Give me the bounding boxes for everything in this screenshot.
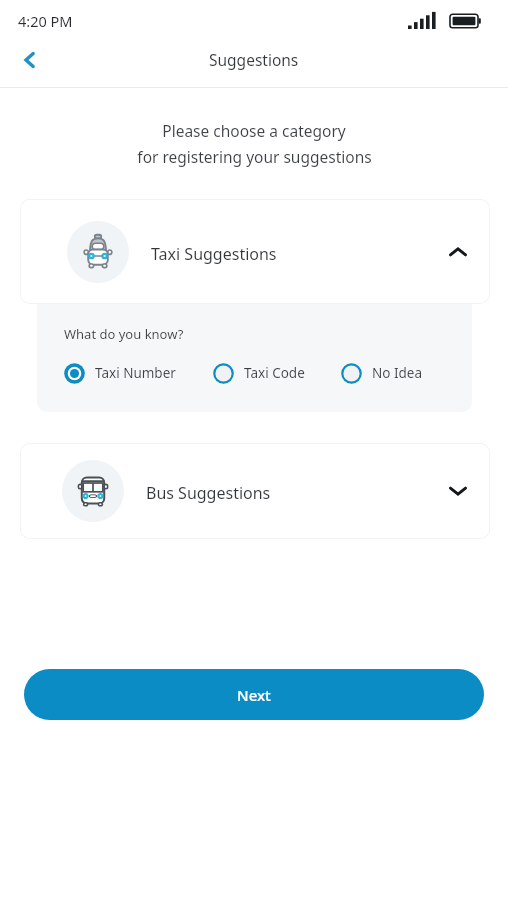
button[interactable]: Taxi Suggestions bbox=[20, 199, 490, 304]
button[interactable]: Taxi Number bbox=[63, 358, 176, 388]
button[interactable]: Back bbox=[8, 38, 52, 82]
staticText: for registering your suggestions bbox=[137, 146, 372, 167]
staticText: No Idea bbox=[372, 364, 423, 382]
button[interactable]: Taxi Code bbox=[212, 358, 305, 388]
staticText: Please choose a category bbox=[162, 120, 346, 141]
button[interactable]: Bus Suggestions bbox=[20, 443, 490, 539]
staticText: Suggestions bbox=[209, 49, 299, 70]
button[interactable]: No Idea bbox=[340, 358, 423, 388]
button[interactable]: Collapse Taxi Suggestions bbox=[436, 230, 480, 274]
button[interactable]: Expand Bus Suggestions bbox=[436, 469, 480, 513]
button[interactable]: Next bbox=[24, 669, 484, 720]
staticText: Bus Suggestions bbox=[146, 482, 271, 504]
staticText: Taxi Code bbox=[244, 364, 305, 382]
staticText: What do you know? bbox=[64, 325, 184, 343]
staticText: Next bbox=[237, 685, 271, 705]
staticText: 4:20 PM bbox=[18, 11, 73, 31]
staticText: Taxi Number bbox=[95, 364, 176, 382]
staticText: Taxi Suggestions bbox=[151, 243, 277, 265]
